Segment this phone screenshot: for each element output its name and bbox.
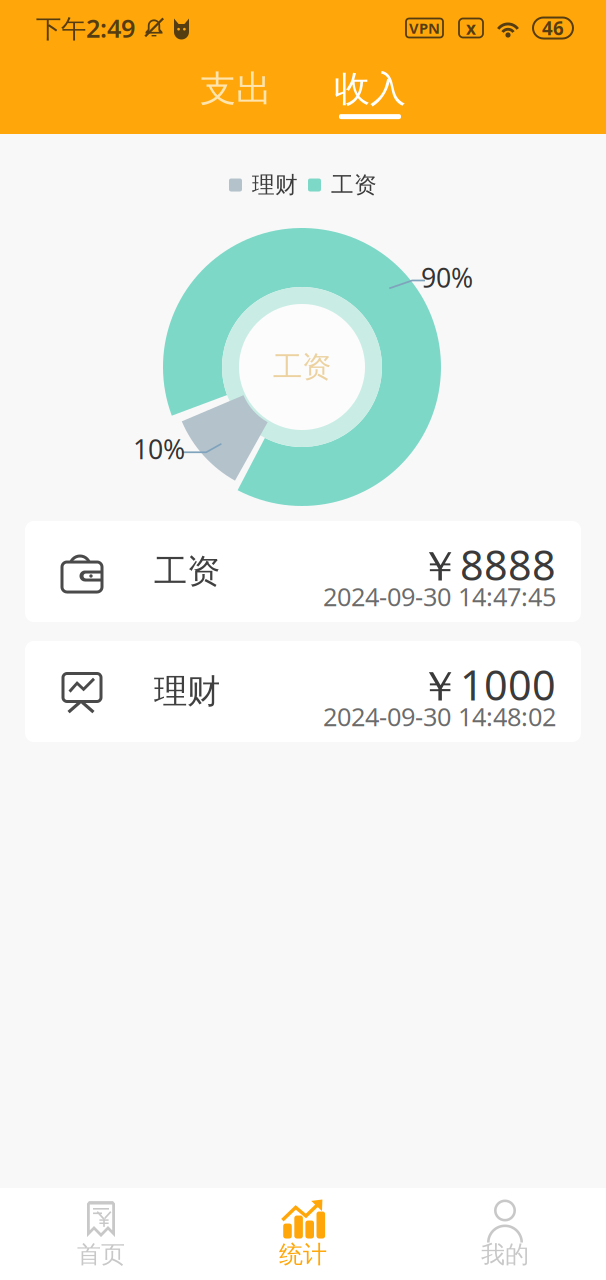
- staticText: 理财: [154, 671, 220, 712]
- staticText: 下午2:49: [36, 11, 135, 45]
- button[interactable]: 支出: [171, 67, 301, 119]
- staticText: 收入: [334, 67, 406, 111]
- staticText: 工资: [331, 171, 377, 199]
- staticText: 首页: [77, 1240, 125, 1269]
- staticText: ￥1000: [419, 657, 556, 712]
- staticText: 统计: [279, 1240, 327, 1269]
- button[interactable]: 首页: [0, 1188, 202, 1280]
- button[interactable]: 工资: [25, 521, 581, 622]
- staticText: x: [466, 16, 476, 39]
- staticText: 支出: [200, 67, 272, 111]
- staticText: 2024-09-30 14:47:45: [323, 580, 556, 613]
- staticText: 10%: [133, 431, 185, 467]
- staticText: 理财: [252, 171, 298, 199]
- staticText: 我的: [481, 1240, 529, 1269]
- button[interactable]: 收入: [305, 67, 435, 119]
- staticText: 90%: [421, 260, 473, 295]
- button[interactable]: 理财: [25, 641, 581, 742]
- button[interactable]: 我的: [404, 1188, 606, 1280]
- staticText: VPN: [409, 18, 440, 38]
- button[interactable]: 统计: [202, 1188, 404, 1280]
- staticText: 2024-09-30 14:48:02: [323, 700, 556, 733]
- staticText: ￥8888: [419, 537, 556, 592]
- staticText: 46: [542, 16, 564, 40]
- staticText: 工资: [154, 551, 220, 592]
- staticText: 工资: [273, 349, 331, 385]
